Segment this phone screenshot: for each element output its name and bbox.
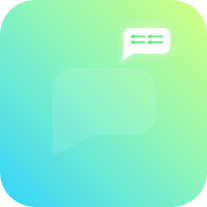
button[interactable]: Chat app icon bbox=[0, 0, 207, 207]
